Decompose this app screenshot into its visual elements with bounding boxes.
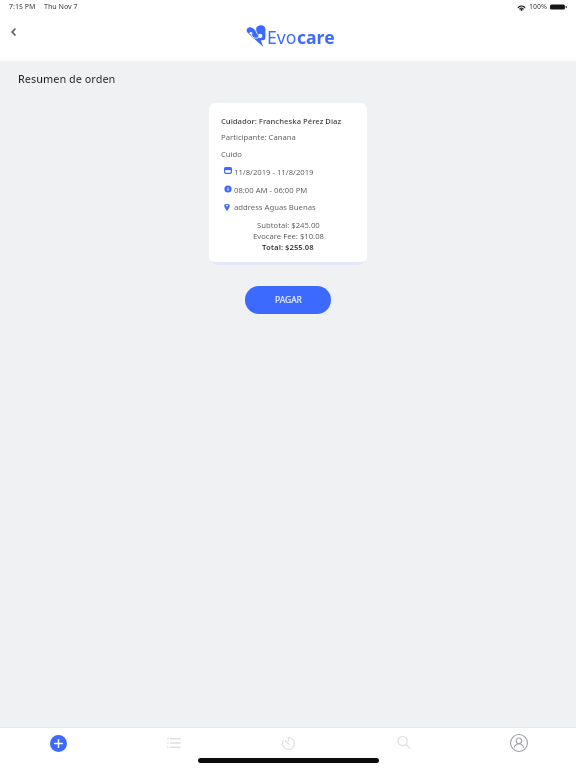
staticText: Cuidador: Francheska Pérez Diaz (221, 116, 342, 126)
staticText: Subtotal: $245.00 (257, 220, 320, 230)
staticText: Cuido (221, 149, 242, 159)
staticText: care (297, 25, 335, 48)
staticText: 11/8/2019 - 11/8/2019 (234, 167, 314, 177)
button[interactable]: Back (1, 19, 26, 44)
staticText: address Aguas Buenas (234, 202, 316, 212)
staticText: Evocare Fee: $10.08 (253, 231, 324, 241)
button[interactable]: History (231, 728, 346, 758)
staticText: Evo (267, 25, 297, 48)
button[interactable]: Search (346, 728, 461, 758)
button[interactable]: Add new (0, 728, 116, 758)
button[interactable]: Profile (461, 728, 576, 758)
staticText: 08:00 AM - 06:00 PM (234, 185, 308, 195)
staticText: Resumen de orden (18, 71, 116, 86)
staticText: 100% (529, 2, 547, 12)
staticText: Participante: Canana (221, 132, 296, 142)
staticText: PAGAR (275, 294, 302, 306)
staticText: 7:15 PM (9, 2, 36, 12)
staticText: Total: $255.08 (262, 242, 314, 252)
staticText: Thu Nov 7 (44, 2, 78, 12)
button[interactable]: PAGAR (245, 286, 331, 314)
button[interactable]: List (116, 728, 231, 758)
